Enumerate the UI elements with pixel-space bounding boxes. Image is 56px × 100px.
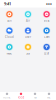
staticText: Home: [3, 96, 11, 99]
staticText: Cloud: [5, 35, 14, 39]
button[interactable]: Star: [19, 42, 37, 56]
button[interactable]: Beat: [37, 10, 56, 23]
button[interactable]: Feed: [14, 92, 28, 100]
staticText: Leaf: [44, 52, 49, 55]
button[interactable]: Wave: [0, 42, 19, 56]
staticText: 9:41: [4, 1, 11, 6]
staticText: ▪▪▪: [46, 2, 52, 5]
button[interactable]: Leaf: [37, 42, 56, 56]
staticText: Me: [47, 96, 51, 99]
button[interactable]: Fav: [28, 92, 42, 100]
staticText: Cam: [44, 35, 49, 39]
button[interactable]: Cam: [37, 26, 56, 39]
button[interactable]: Air: [19, 10, 37, 23]
button[interactable]: Me: [42, 92, 56, 100]
staticText: User: [25, 35, 31, 39]
staticText: Fav: [33, 96, 36, 99]
staticText: Star: [26, 52, 30, 55]
button[interactable]: Sun: [0, 10, 19, 23]
staticText: Feed: [17, 96, 24, 99]
staticText: Sun: [7, 19, 12, 22]
staticText: Wave: [6, 52, 12, 55]
staticText: Beat: [44, 19, 50, 22]
button[interactable]: Home: [0, 92, 14, 100]
staticText: Air: [26, 19, 30, 22]
button[interactable]: Cloud: [0, 26, 19, 39]
button[interactable]: User: [19, 26, 37, 39]
